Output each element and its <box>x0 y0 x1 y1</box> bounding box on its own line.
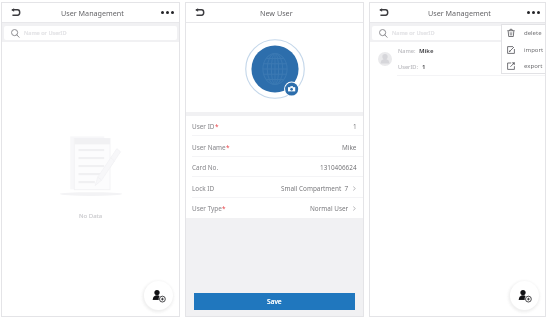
button[interactable]: User Name <box>192 137 357 157</box>
staticText: New User <box>260 8 293 18</box>
button[interactable]: Name or UserID <box>372 26 543 40</box>
button[interactable]: Back <box>191 4 208 21</box>
staticText: Small Compartment 7 <box>281 184 349 193</box>
button[interactable]: Card No. <box>192 157 357 177</box>
staticText: 1 <box>353 122 357 131</box>
staticText: 1 <box>422 63 426 71</box>
staticText: 1310406624 <box>320 163 357 172</box>
button[interactable]: Back <box>375 4 392 21</box>
button[interactable]: export <box>506 58 546 74</box>
button[interactable]: User Type <box>192 198 357 218</box>
staticText: UserID: <box>398 63 419 71</box>
staticText: User ID <box>192 122 215 131</box>
staticText: Name or UserID <box>24 29 67 37</box>
staticText: * <box>222 204 226 213</box>
button[interactable]: Back <box>7 4 24 21</box>
staticText: Lock ID <box>192 184 215 193</box>
button[interactable]: Add user <box>144 281 173 310</box>
button[interactable]: User ID <box>192 116 357 136</box>
staticText: Name: <box>398 47 416 55</box>
button[interactable]: Name or UserID <box>4 26 177 40</box>
staticText: * <box>215 122 219 131</box>
button[interactable]: More options <box>160 5 175 20</box>
button[interactable]: More options <box>526 5 541 20</box>
button[interactable]: Add user <box>510 281 539 310</box>
staticText: * <box>226 143 230 152</box>
staticText: User Name <box>192 143 226 152</box>
staticText: Normal User <box>310 204 349 213</box>
staticText: No Data <box>79 212 103 220</box>
button[interactable]: Name: <box>378 42 540 75</box>
button[interactable]: Save <box>194 293 355 310</box>
button[interactable]: Lock ID <box>192 178 357 198</box>
staticText: import <box>524 46 544 54</box>
staticText: Name or UserID <box>392 29 435 37</box>
staticText: Mike <box>419 47 434 55</box>
button[interactable]: import <box>506 41 546 58</box>
staticText: Card No. <box>192 163 219 172</box>
staticText: User Type <box>192 204 222 213</box>
staticText: User Management <box>61 8 124 18</box>
staticText: User Management <box>428 8 491 18</box>
button[interactable]: delete <box>506 24 546 41</box>
staticText: export <box>524 62 543 70</box>
staticText: delete <box>524 29 542 37</box>
staticText: Save <box>267 297 282 306</box>
staticText: Mike <box>342 143 357 152</box>
